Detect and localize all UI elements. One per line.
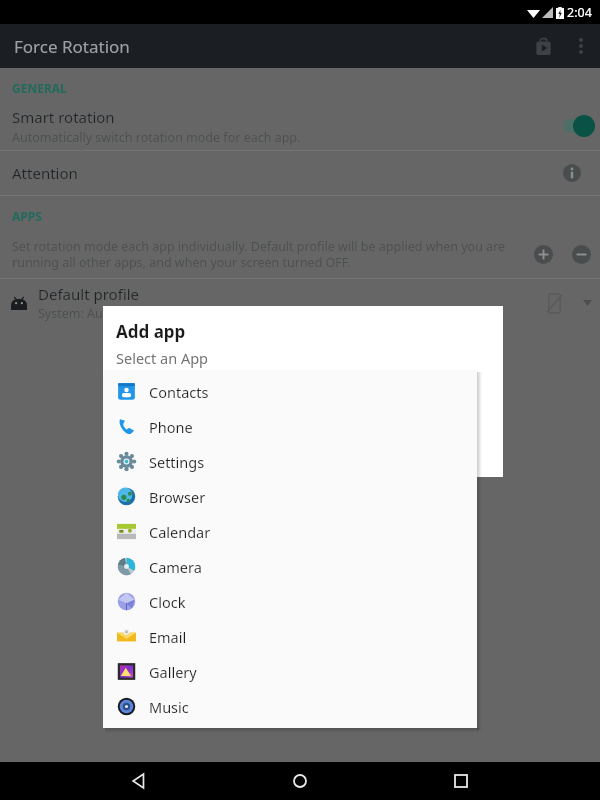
staticText: Clock [149,592,477,612]
staticText: Attention [12,163,544,183]
staticText: Music [149,697,477,717]
staticText: System: Auto [38,305,115,322]
button[interactable]: Contacts [103,374,477,409]
staticText: Automatically switch rotation mode for e… [12,129,301,146]
staticText: Email [149,627,477,647]
staticText: Set rotation mode each app individually.… [12,238,518,271]
button[interactable]: Home [278,762,322,800]
button[interactable]: Back [117,762,161,800]
button[interactable]: More options [562,27,600,65]
button[interactable]: Remove [562,235,600,273]
button[interactable]: Email [103,619,477,654]
staticText: Smart rotation [12,107,115,127]
staticText: 2:04 [567,4,592,21]
staticText: Settings [149,452,477,472]
staticText: Camera [149,557,477,577]
button[interactable]: Phone [103,409,477,444]
button[interactable]: Clock [103,584,477,619]
staticText: APPS [12,208,42,224]
staticText: Select an App [116,348,208,368]
other: Info [544,151,600,195]
button[interactable]: Default profile [0,279,600,327]
button[interactable]: Play Store [524,27,562,65]
button[interactable]: Recents [439,762,483,800]
button[interactable]: Settings [103,444,477,479]
button[interactable]: Browser [103,479,477,514]
staticText: Contacts [149,382,477,402]
staticText: Default profile [38,284,139,304]
staticText: Add app [116,320,186,343]
button[interactable]: Music [103,689,477,724]
staticText: Force Rotation [14,35,130,58]
button[interactable]: Calendar [103,514,477,549]
staticText: Phone [149,417,477,437]
button[interactable]: Camera [103,549,477,584]
button[interactable]: Smart rotation [0,102,600,150]
staticText: GENERAL [12,80,67,96]
button[interactable]: Attention [0,151,600,195]
button[interactable]: Gallery [103,654,477,689]
staticText: Gallery [149,662,477,682]
staticText: Browser [149,487,477,507]
button[interactable]: Add [524,235,562,273]
staticText: Calendar [149,522,477,542]
